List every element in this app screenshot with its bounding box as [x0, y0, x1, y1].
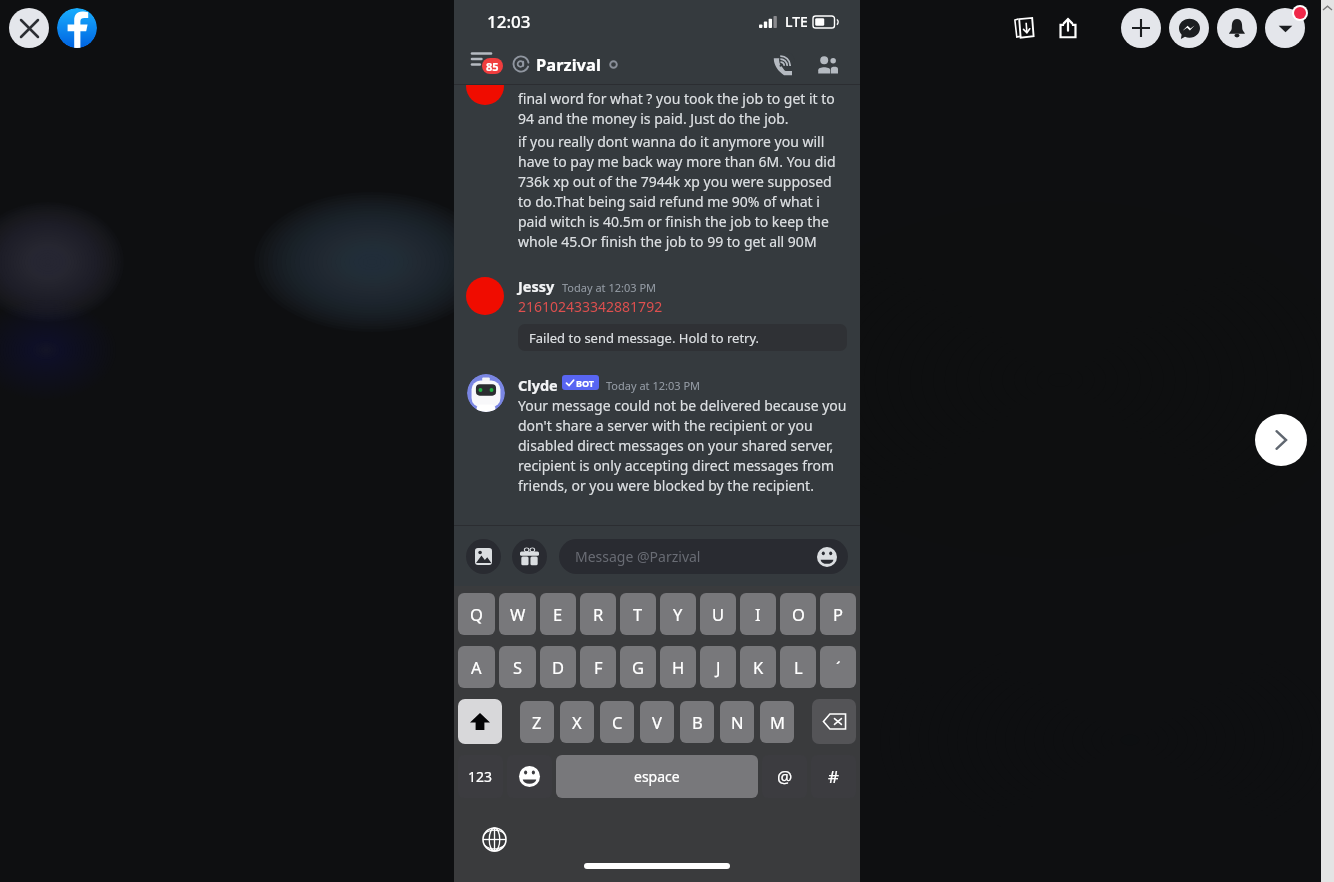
staticText: Failed to send message. Hold to retry.: [529, 329, 760, 347]
staticText: Jessy: [518, 276, 555, 296]
staticText: I: [755, 603, 761, 625]
button[interactable]: S: [499, 646, 536, 688]
button[interactable]: L: [780, 646, 816, 688]
staticText: Today at 12:03 PM: [606, 378, 701, 393]
button[interactable]: Next: [1255, 414, 1307, 466]
staticText: R: [593, 603, 604, 625]
staticText: #: [828, 765, 839, 788]
button[interactable]: N: [720, 701, 754, 743]
staticText: H: [672, 656, 685, 678]
button[interactable]: Menu, 85 unread: [468, 49, 506, 79]
staticText: P: [833, 603, 843, 625]
button[interactable]: espace: [556, 755, 758, 798]
button[interactable]: Q: [458, 593, 495, 635]
staticText: O: [792, 603, 805, 625]
button[interactable]: Notifications: [1217, 8, 1257, 48]
staticText: D: [552, 656, 565, 678]
button[interactable]: B: [680, 701, 714, 743]
button[interactable]: Facebook: [57, 8, 97, 48]
staticText: Message @Parzival: [575, 547, 701, 566]
button[interactable]: U: [700, 593, 736, 635]
staticText: E: [553, 603, 563, 625]
staticText: U: [712, 603, 725, 625]
staticText: 216102433342881792: [518, 297, 663, 316]
button[interactable]: V: [640, 701, 674, 743]
staticText: 123: [468, 767, 493, 786]
button[interactable]: W: [499, 593, 536, 635]
button[interactable]: E: [540, 593, 576, 635]
button[interactable]: Z: [520, 701, 554, 743]
button[interactable]: Start voice call: [766, 48, 798, 80]
button[interactable]: O: [780, 593, 816, 635]
button[interactable]: @: [762, 755, 807, 798]
button[interactable]: Backspace: [812, 699, 856, 744]
button[interactable]: Emoji keyboard: [507, 755, 552, 798]
button[interactable]: J: [700, 646, 736, 688]
staticText: T: [633, 603, 643, 625]
staticText: L: [794, 656, 803, 678]
staticText: final word for what ? you took the job t…: [518, 89, 848, 128]
staticText: espace: [634, 767, 680, 786]
button[interactable]: D: [540, 646, 576, 688]
staticText: X: [572, 711, 582, 733]
staticText: J: [716, 656, 721, 678]
button[interactable]: Y: [660, 593, 696, 635]
staticText: G: [632, 656, 645, 678]
button[interactable]: Send a gift: [512, 539, 547, 574]
staticText: F: [594, 656, 603, 678]
other: Emoji picker: [817, 547, 837, 567]
button[interactable]: Messenger: [1169, 8, 1209, 48]
staticText: M: [770, 711, 785, 733]
staticText: Y: [673, 603, 683, 625]
button[interactable]: Show members: [810, 48, 842, 80]
staticText: Your message could not be delivered beca…: [518, 396, 848, 495]
button[interactable]: Close: [9, 8, 49, 48]
staticText: B: [692, 711, 703, 733]
button[interactable]: Attach image: [466, 539, 501, 574]
staticText: Parzival: [536, 53, 601, 75]
staticText: N: [731, 711, 744, 733]
staticText: if you really dont wanna do it anymore y…: [518, 132, 848, 251]
staticText: S: [513, 656, 523, 678]
staticText: ´: [836, 656, 841, 678]
button[interactable]: Create new: [1121, 8, 1161, 48]
button[interactable]: K: [740, 646, 776, 688]
button[interactable]: Share: [1048, 8, 1088, 48]
button[interactable]: #: [811, 755, 856, 798]
button[interactable]: T: [620, 593, 656, 635]
staticText: 12:03: [487, 10, 531, 33]
button[interactable]: M: [760, 701, 794, 743]
button[interactable]: Message @Parzival: [559, 539, 848, 574]
staticText: LTE: [785, 12, 808, 31]
staticText: Clyde: [518, 375, 558, 395]
staticText: @: [777, 765, 793, 788]
button[interactable]: G: [620, 646, 656, 688]
staticText: Z: [532, 711, 542, 733]
button[interactable]: A: [458, 646, 495, 688]
button[interactable]: P: [820, 593, 856, 635]
button[interactable]: ´: [820, 646, 856, 688]
staticText: A: [471, 656, 482, 678]
staticText: K: [753, 656, 764, 678]
staticText: Today at 12:03 PM: [562, 280, 657, 295]
button[interactable]: F: [580, 646, 616, 688]
button[interactable]: Account: [1265, 8, 1305, 48]
staticText: W: [510, 603, 526, 625]
button[interactable]: X: [560, 701, 594, 743]
button[interactable]: I: [740, 593, 776, 635]
button[interactable]: H: [660, 646, 696, 688]
button[interactable]: Change keyboard language: [481, 826, 507, 852]
button[interactable]: R: [580, 593, 616, 635]
button[interactable]: C: [600, 701, 634, 743]
staticText: 85: [486, 59, 499, 74]
staticText: C: [612, 711, 623, 733]
staticText: BOT: [576, 377, 595, 389]
staticText: V: [652, 711, 662, 733]
button[interactable]: Shift: [458, 699, 502, 744]
button[interactable]: Save: [1004, 8, 1044, 48]
staticText: Q: [470, 603, 483, 625]
button[interactable]: 123: [458, 755, 503, 798]
